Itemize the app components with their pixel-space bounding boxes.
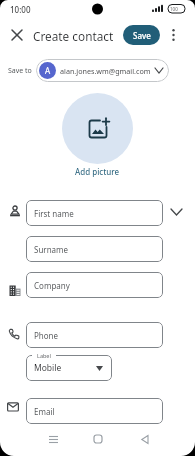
button[interactable]: Mobile: [26, 355, 112, 381]
staticText: Save to: [8, 66, 32, 76]
button[interactable]: [89, 431, 107, 447]
staticText: 100: [170, 6, 178, 12]
button[interactable]: First name: [26, 200, 163, 226]
button[interactable]: [9, 27, 25, 43]
button[interactable]: Company: [26, 272, 163, 298]
staticText: Surname: [34, 244, 69, 255]
staticText: First name: [34, 208, 74, 219]
button[interactable]: [135, 431, 153, 447]
button[interactable]: A: [36, 59, 169, 82]
staticText: Phone: [34, 330, 59, 341]
staticText: Mobile: [34, 362, 62, 374]
button[interactable]: [166, 27, 180, 43]
staticText: alan.jones.wm@gmail.com: [60, 66, 151, 76]
button[interactable]: [44, 431, 62, 447]
staticText: Save: [133, 30, 151, 41]
staticText: Create contact: [33, 28, 114, 44]
staticText: Add picture: [75, 166, 120, 177]
staticText: Label: [37, 352, 51, 359]
staticText: Company: [34, 280, 70, 291]
staticText: 10:00: [10, 4, 31, 15]
button[interactable]: Save: [123, 25, 160, 45]
button[interactable]: Phone: [26, 322, 163, 348]
staticText: A: [45, 65, 51, 76]
button[interactable]: [62, 93, 133, 164]
button[interactable]: Add picture: [0, 166, 195, 177]
button[interactable]: Email: [26, 398, 163, 424]
button[interactable]: Surname: [26, 236, 163, 262]
staticText: Email: [34, 406, 55, 417]
